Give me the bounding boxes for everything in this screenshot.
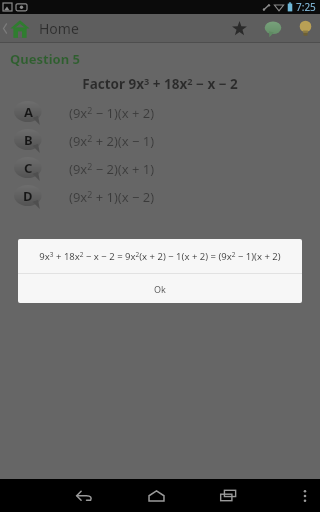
staticText: C: [24, 159, 33, 177]
button[interactable]: Back: [62, 479, 106, 512]
button[interactable]: Recent apps: [206, 479, 250, 512]
button[interactable]: More options: [290, 479, 320, 512]
button[interactable]: Home: [0, 14, 85, 43]
staticText: A: [24, 103, 33, 121]
button[interactable]: Favourite: [222, 14, 256, 43]
staticText: Question 5: [10, 50, 80, 68]
staticText: (9x2 − 1)(x + 2): [69, 104, 155, 122]
button[interactable]: Hint: [290, 14, 320, 43]
staticText: Home: [39, 19, 79, 38]
staticText: (9x2 + 2)(x − 1): [69, 132, 155, 150]
staticText: B: [24, 131, 33, 149]
staticText: 9x3 + 18x2 − x − 2 = 9x2(x + 2) − 1(x + …: [39, 250, 281, 263]
button[interactable]: C: [0, 155, 320, 183]
button[interactable]: B: [0, 127, 320, 155]
button[interactable]: D: [0, 183, 320, 211]
button[interactable]: Comments: [256, 14, 290, 43]
staticText: (9x2 − 2)(x + 1): [69, 160, 155, 178]
staticText: D: [23, 187, 33, 205]
staticText: Factor 9x3 + 18x2 − x − 2: [82, 75, 238, 93]
staticText: 7:25: [296, 0, 316, 14]
staticText: Ok: [154, 283, 166, 295]
button[interactable]: A: [0, 99, 320, 127]
button[interactable]: Home: [134, 479, 178, 512]
button[interactable]: Ok: [18, 274, 302, 303]
staticText: (9x2 + 1)(x − 2): [69, 188, 155, 206]
